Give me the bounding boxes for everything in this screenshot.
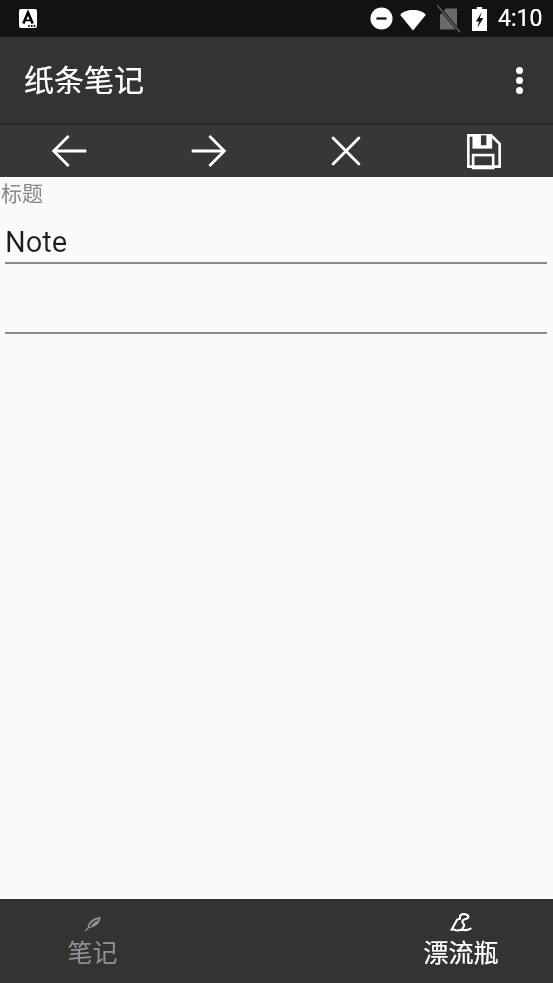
- staticText: 漂流瓶: [423, 933, 499, 969]
- button[interactable]: Note: [0, 213, 553, 264]
- button[interactable]: Redo: [139, 125, 277, 177]
- button[interactable]: Undo: [0, 125, 139, 177]
- staticText: 笔记: [67, 933, 118, 969]
- button[interactable]: 漂流瓶: [369, 899, 553, 983]
- staticText: Note: [5, 225, 68, 259]
- button[interactable]: More options: [485, 37, 553, 123]
- button[interactable]: Save: [415, 125, 553, 177]
- button[interactable]: Clear: [277, 125, 415, 177]
- staticText: 标题: [1, 177, 43, 207]
- staticText: 纸条笔记: [24, 56, 144, 99]
- button[interactable]: 笔记: [0, 899, 185, 983]
- button[interactable]: [0, 264, 553, 334]
- staticText: 4:10: [498, 5, 543, 32]
